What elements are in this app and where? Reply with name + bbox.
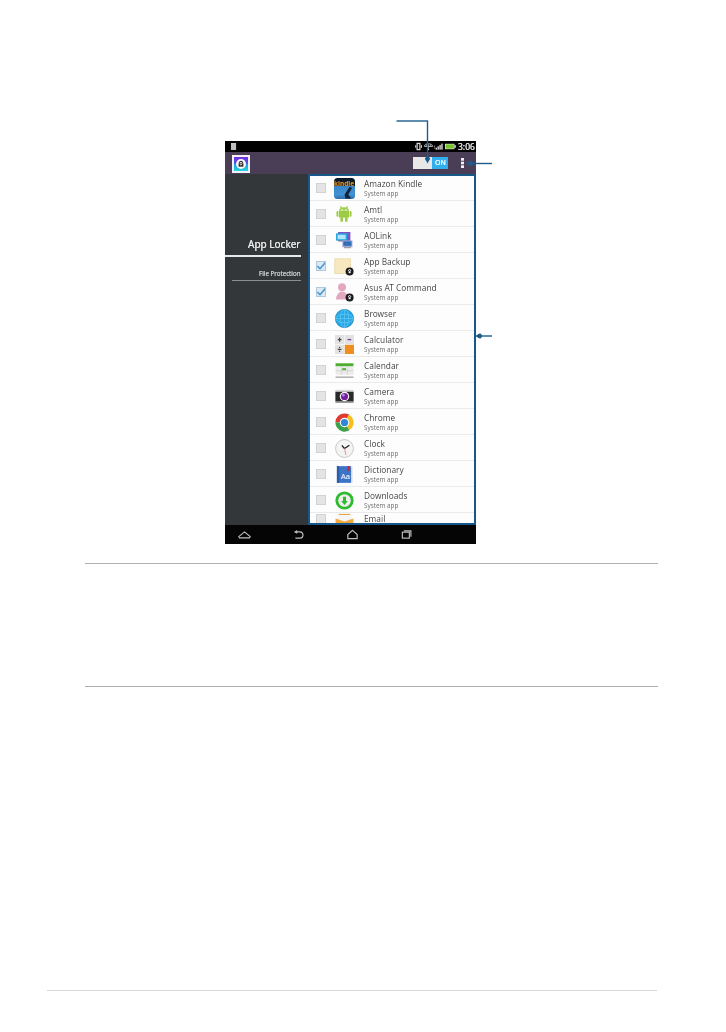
staticText: AOLink [364,230,392,241]
staticText: System app [364,319,399,328]
button[interactable]: Clock [310,435,474,461]
button[interactable]: Amtl [310,201,474,227]
button[interactable]: App Locker [234,157,248,171]
staticText: File Protection [259,269,301,277]
staticText: Downloads [364,490,408,501]
staticText: System app [364,293,399,302]
staticText: App Backup [364,256,411,267]
staticText: Camera [364,386,395,397]
staticText: Clock [364,438,385,449]
button[interactable]: Asus AT Command [310,279,474,305]
button[interactable]: Calculator [310,331,474,357]
staticText: Chrome [364,412,396,423]
button[interactable]: Aa [310,461,474,487]
button[interactable]: Downloads [310,487,474,513]
staticText: Browser [364,308,397,319]
staticText: System app [364,267,399,276]
staticText: Calendar [364,360,400,371]
staticText: System app [364,345,399,354]
button[interactable]: App Locker [225,214,301,257]
staticText: System app [364,475,399,484]
staticText: Dictionary [364,464,404,475]
staticText: System app [364,189,399,198]
staticText: Aa [341,471,350,481]
button[interactable]: Calendar [310,357,474,383]
staticText: System app [364,449,399,458]
button[interactable]: Toggle App Locker [413,157,448,169]
button[interactable]: Chrome [310,409,474,435]
staticText: Amazon Kindle [364,178,423,189]
staticText: Asus AT Command [364,282,437,293]
button[interactable]: kindle [310,175,474,201]
staticText: Calculator [364,334,404,345]
button[interactable]: Back [271,525,325,544]
staticText: System app [364,501,399,510]
button[interactable]: Email [310,513,474,525]
staticText: System app [364,397,399,406]
staticText: App Locker [248,237,301,251]
staticText: Amtl [364,204,383,215]
button[interactable]: Home [325,525,379,544]
button[interactable]: Camera [310,383,474,409]
button[interactable]: AOLink [310,227,474,253]
button[interactable]: Browser [310,305,474,331]
staticText: Email [364,513,386,524]
button[interactable]: More options [456,157,468,169]
staticText: System app [364,215,399,224]
staticText: 3:06 [458,141,475,152]
button[interactable]: Previous app [217,525,271,544]
staticText: System app [364,371,399,380]
button[interactable]: App Backup [310,253,474,279]
staticText: ON [435,158,446,168]
button[interactable]: File Protection [225,257,301,281]
staticText: System app [364,241,399,250]
button[interactable]: Recent apps [379,525,433,544]
staticText: System app [364,423,399,432]
staticText: kindle [334,179,355,188]
